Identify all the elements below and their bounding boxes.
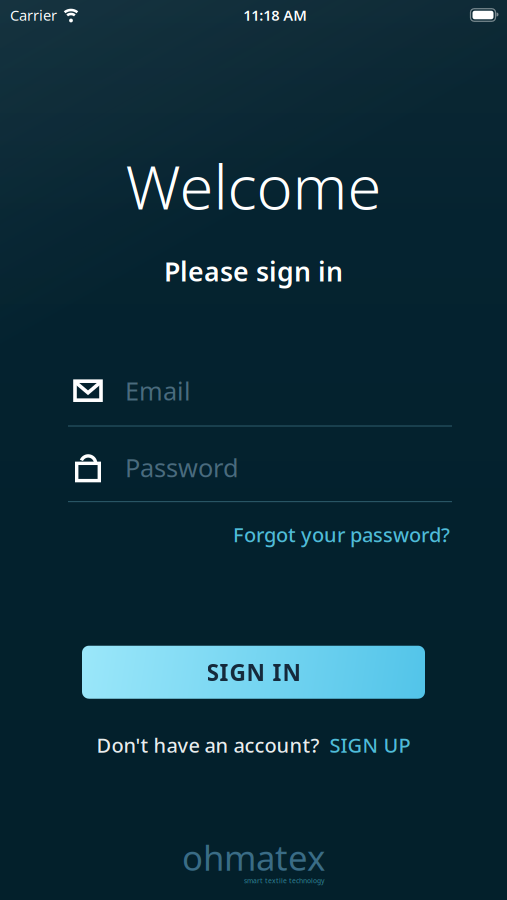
staticText: Password <box>125 450 239 484</box>
button[interactable]: Forgot your password? <box>233 521 450 548</box>
staticText: smart textile technology <box>244 876 325 885</box>
staticText: ohmatex <box>182 834 325 880</box>
staticText: SIGN IN <box>206 657 300 687</box>
button[interactable]: SIGN IN <box>82 646 425 699</box>
button[interactable]: SIGN UP <box>329 732 410 758</box>
button[interactable]: Email <box>0 374 507 426</box>
staticText: Welcome <box>125 145 381 226</box>
staticText: SIGN UP <box>329 732 410 758</box>
staticText: Don't have an account? <box>96 732 319 758</box>
staticText: Please sign in <box>164 253 343 289</box>
button[interactable]: Password <box>0 450 507 502</box>
staticText: Email <box>125 374 191 407</box>
staticText: 11:18 AM <box>243 5 307 25</box>
staticText: Carrier <box>10 5 57 25</box>
staticText: Forgot your password? <box>233 521 450 548</box>
